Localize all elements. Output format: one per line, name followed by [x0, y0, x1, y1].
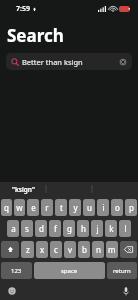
- staticText: Search: [7, 24, 64, 47]
- button[interactable]: c: [50, 241, 62, 258]
- staticText: f: [54, 223, 57, 234]
- button[interactable]: Clear search: [118, 57, 127, 66]
- button[interactable]: q: [1, 199, 12, 216]
- staticText: return: [113, 267, 131, 275]
- staticText: w: [16, 202, 23, 213]
- staticText: s: [25, 223, 29, 234]
- staticText: p: [129, 202, 134, 213]
- staticText: e: [31, 202, 36, 213]
- button[interactable]: o: [111, 199, 123, 216]
- staticText: "ksign": [12, 185, 35, 194]
- staticText: m: [108, 244, 116, 255]
- button[interactable]: m: [106, 241, 118, 258]
- button[interactable]: e: [27, 199, 39, 216]
- staticText: 123: [11, 267, 22, 275]
- button[interactable]: space: [34, 262, 105, 279]
- staticText: k: [109, 223, 114, 234]
- button[interactable]: b: [78, 241, 90, 258]
- staticText: q: [4, 202, 9, 213]
- staticText: n: [96, 244, 101, 255]
- button[interactable]: l: [119, 220, 131, 237]
- button[interactable]: r: [41, 199, 53, 216]
- staticText: o: [115, 202, 120, 213]
- button[interactable]: u: [83, 199, 95, 216]
- staticText: a: [11, 223, 16, 234]
- button[interactable]: i: [97, 199, 109, 216]
- button[interactable]: Better than ksign: [6, 53, 132, 70]
- staticText: u: [87, 202, 92, 213]
- button[interactable]: k: [105, 220, 117, 237]
- staticText: j: [96, 223, 99, 234]
- button[interactable]: Voice input: [120, 285, 132, 297]
- button[interactable]: a: [7, 220, 19, 237]
- button[interactable]: p: [125, 199, 137, 216]
- staticText: h: [81, 223, 86, 234]
- button[interactable]: n: [92, 241, 104, 258]
- staticText: t: [60, 202, 63, 213]
- button[interactable]: y: [69, 199, 81, 216]
- staticText: Better than ksign: [22, 57, 118, 67]
- staticText: x: [40, 244, 45, 255]
- button[interactable]: return: [107, 262, 137, 279]
- button[interactable]: s: [21, 220, 33, 237]
- staticText: g: [67, 223, 72, 234]
- button[interactable]: f: [49, 220, 61, 237]
- button[interactable]: w: [14, 199, 25, 216]
- button[interactable]: z: [21, 241, 34, 258]
- staticText: d: [39, 223, 44, 234]
- button[interactable]: x: [36, 241, 48, 258]
- staticText: 7:59: [16, 4, 30, 14]
- button[interactable]: Shift: [1, 241, 19, 258]
- staticText: l: [124, 223, 127, 234]
- staticText: c: [54, 244, 58, 255]
- staticText: z: [26, 244, 30, 255]
- button[interactable]: d: [35, 220, 47, 237]
- button[interactable]: Emoji keyboard: [6, 285, 18, 297]
- staticText: y: [73, 202, 78, 213]
- staticText: v: [68, 244, 73, 255]
- button[interactable]: j: [91, 220, 103, 237]
- button[interactable]: g: [63, 220, 75, 237]
- staticText: r: [45, 202, 49, 213]
- button[interactable]: t: [55, 199, 67, 216]
- button[interactable]: v: [64, 241, 76, 258]
- button[interactable]: 123: [1, 262, 32, 279]
- button[interactable]: Backspace: [120, 241, 137, 258]
- button[interactable]: h: [77, 220, 89, 237]
- staticText: i: [102, 202, 105, 213]
- button[interactable]: "ksign": [0, 182, 46, 196]
- staticText: space: [61, 267, 78, 275]
- staticText: b: [82, 244, 87, 255]
